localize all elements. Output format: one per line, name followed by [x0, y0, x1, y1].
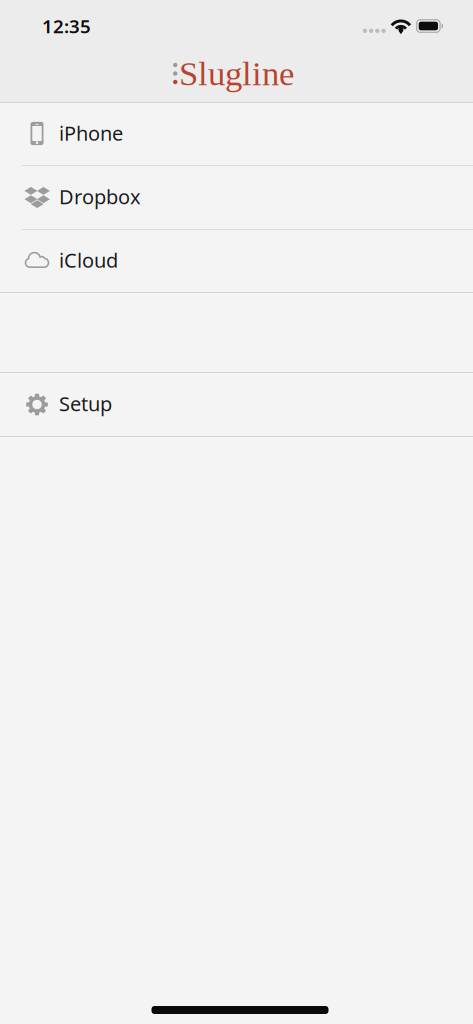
button[interactable]: Setup: [0, 373, 473, 436]
staticText: iPhone: [59, 120, 123, 146]
button[interactable]: iPhone: [0, 103, 473, 165]
staticText: 12:35: [42, 14, 91, 38]
button[interactable]: Dropbox: [0, 166, 473, 229]
button[interactable]: iCloud: [0, 230, 473, 292]
staticText: iCloud: [59, 247, 118, 273]
staticText: Setup: [59, 390, 112, 417]
staticText: Slugline: [179, 54, 294, 93]
button[interactable]: Slugline: [0, 46, 473, 102]
staticText: Dropbox: [59, 183, 141, 210]
